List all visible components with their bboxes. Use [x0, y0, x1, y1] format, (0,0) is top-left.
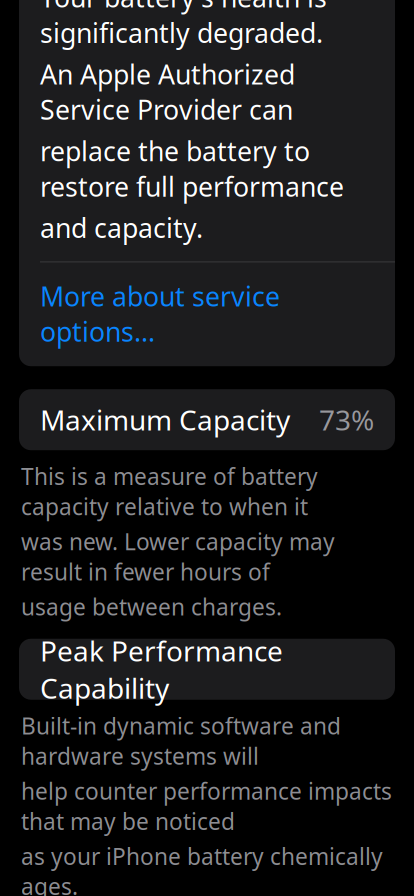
staticText: help counter performance impacts that ma…	[21, 776, 392, 836]
staticText: usage between charges.	[21, 592, 282, 622]
staticText: Peak Performance Capability	[40, 632, 283, 706]
staticText: This is a measure of battery capacity re…	[21, 461, 318, 521]
staticText: replace the battery to restore full perf…	[40, 133, 344, 204]
staticText: 73%	[319, 401, 374, 438]
staticText: and capacity.	[40, 210, 203, 245]
staticText: Maximum Capacity	[40, 401, 290, 438]
staticText: An Apple Authorized Service Provider can	[40, 56, 295, 127]
staticText: More about service options...	[40, 278, 280, 349]
staticText: was new. Lower capacity may result in fe…	[21, 526, 335, 587]
button[interactable]: Peak Performance Capability	[19, 639, 395, 700]
staticText: as your iPhone battery chemically ages.	[21, 841, 383, 896]
staticText: Your battery's health is significantly d…	[40, 0, 327, 50]
staticText: Built-in dynamic software and hardware s…	[21, 711, 341, 771]
button[interactable]: More about service options...	[19, 262, 395, 366]
